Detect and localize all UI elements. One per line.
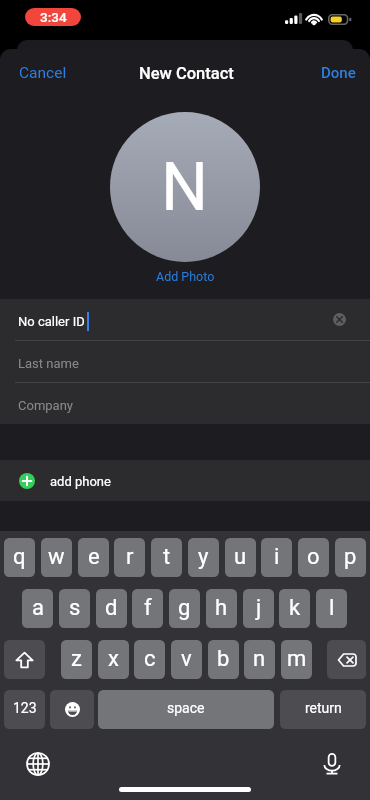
button[interactable]: v [171, 640, 202, 679]
button[interactable]: w [41, 538, 72, 577]
button[interactable]: g [169, 589, 200, 628]
staticText: a [32, 595, 44, 621]
staticText: g [178, 595, 191, 621]
staticText: Last name [18, 356, 79, 371]
staticText: f [144, 595, 152, 621]
staticText: No caller ID [18, 314, 85, 329]
button[interactable]: q [4, 538, 35, 577]
staticText: Cancel [19, 64, 67, 82]
staticText: h [215, 595, 228, 621]
button[interactable]: space [98, 690, 274, 729]
staticText: m [287, 646, 307, 672]
button[interactable]: Emoji [50, 690, 94, 729]
button[interactable]: t [151, 538, 182, 577]
button[interactable]: Dictation [320, 752, 344, 776]
button[interactable]: c [134, 640, 165, 679]
button[interactable]: l [316, 589, 347, 628]
button[interactable]: r [114, 538, 145, 577]
staticText: Done [321, 64, 356, 82]
staticText: v [181, 646, 192, 672]
button[interactable]: f [132, 589, 163, 628]
staticText: c [144, 646, 156, 672]
staticText: New Contact [139, 64, 234, 83]
staticText: d [105, 595, 118, 621]
button[interactable]: Cancel [0, 55, 86, 91]
staticText: N [161, 149, 209, 226]
staticText: add phone [50, 474, 111, 489]
staticText: 123 [13, 700, 37, 716]
button[interactable]: d [96, 589, 127, 628]
staticText: 3:34 [40, 9, 67, 25]
button[interactable]: return [280, 690, 366, 729]
button[interactable]: m [281, 640, 312, 679]
button[interactable]: p [335, 538, 366, 577]
staticText: b [217, 646, 230, 672]
button[interactable]: Done [307, 55, 370, 91]
staticText: space [167, 700, 205, 716]
button[interactable]: N [110, 112, 260, 262]
button[interactable]: j [243, 589, 274, 628]
button[interactable]: n [244, 640, 275, 679]
staticText: x [108, 646, 119, 672]
button[interactable]: Change keyboard [26, 752, 50, 776]
button[interactable]: a [22, 589, 53, 628]
button[interactable]: Add Photo [152, 265, 219, 288]
button[interactable]: add phone [0, 460, 370, 501]
button[interactable]: Clear text [333, 313, 346, 326]
button[interactable]: h [206, 589, 237, 628]
button[interactable]: Last name [0, 341, 370, 382]
staticText: o [307, 544, 320, 570]
staticText: Add Photo [156, 269, 215, 284]
staticText: p [344, 544, 357, 570]
button[interactable]: Shift [4, 640, 45, 679]
staticText: q [13, 544, 26, 570]
staticText: y [198, 544, 209, 570]
staticText: return [305, 700, 342, 716]
button[interactable]: 123 [4, 690, 45, 729]
button[interactable]: o [298, 538, 329, 577]
staticText: k [289, 595, 301, 621]
staticText: l [329, 595, 335, 621]
button[interactable]: y [188, 538, 219, 577]
button[interactable]: x [98, 640, 129, 679]
staticText: j [256, 595, 262, 621]
staticText: z [71, 646, 82, 672]
button[interactable]: b [208, 640, 239, 679]
staticText: u [234, 544, 247, 570]
button[interactable]: u [225, 538, 256, 577]
button[interactable]: s [59, 589, 90, 628]
button[interactable]: No caller ID [0, 299, 370, 340]
button[interactable]: i [261, 538, 292, 577]
button[interactable]: Backspace [327, 640, 366, 679]
staticText: w [48, 544, 65, 570]
staticText: e [88, 544, 100, 570]
button[interactable]: z [61, 640, 92, 679]
button[interactable]: k [279, 589, 310, 628]
button[interactable]: e [78, 538, 109, 577]
staticText: i [274, 544, 280, 570]
staticText: Company [18, 398, 73, 413]
button[interactable]: Company [0, 383, 370, 424]
staticText: s [69, 595, 81, 621]
staticText: n [253, 646, 266, 672]
staticText: r [126, 544, 134, 570]
staticText: t [163, 544, 171, 570]
